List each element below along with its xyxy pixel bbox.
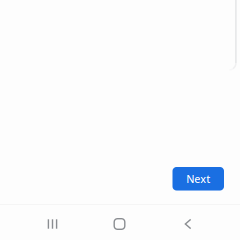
button[interactable]: Back — [165, 205, 210, 240]
button[interactable]: Home — [97, 205, 142, 240]
button[interactable]: Recent apps — [30, 205, 75, 240]
staticText: Next — [186, 172, 210, 186]
button[interactable]: Next — [172, 167, 224, 190]
